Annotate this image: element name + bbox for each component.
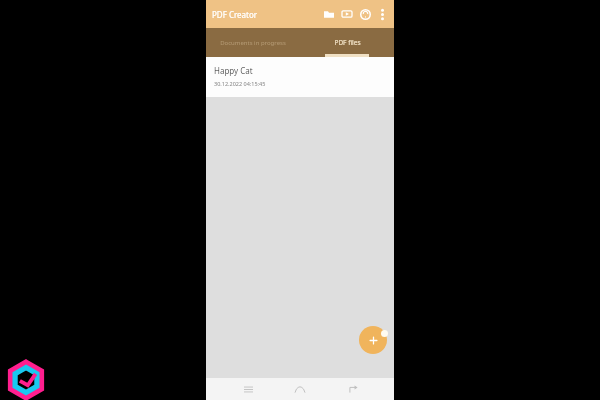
- staticText: Happy Cat: [214, 65, 253, 76]
- staticText: Documents in progress: [220, 39, 286, 47]
- button[interactable]: Create PDF: [359, 326, 387, 354]
- button[interactable]: More options: [374, 6, 390, 22]
- button[interactable]: Recents: [237, 378, 259, 400]
- button[interactable]: Happy Cat: [206, 57, 394, 97]
- button[interactable]: Video: [338, 5, 356, 23]
- button[interactable]: Home: [289, 378, 311, 400]
- button[interactable]: Documents in progress: [206, 28, 300, 57]
- button[interactable]: PDF files: [300, 28, 394, 57]
- button[interactable]: PDF folder: [320, 5, 338, 23]
- staticText: PDF files: [334, 38, 361, 47]
- button[interactable]: Back: [342, 378, 364, 400]
- staticText: 30.12.2022 04:15:45: [214, 80, 266, 87]
- staticText: PDF Creator: [212, 9, 258, 20]
- button[interactable]: Help: [356, 5, 374, 23]
